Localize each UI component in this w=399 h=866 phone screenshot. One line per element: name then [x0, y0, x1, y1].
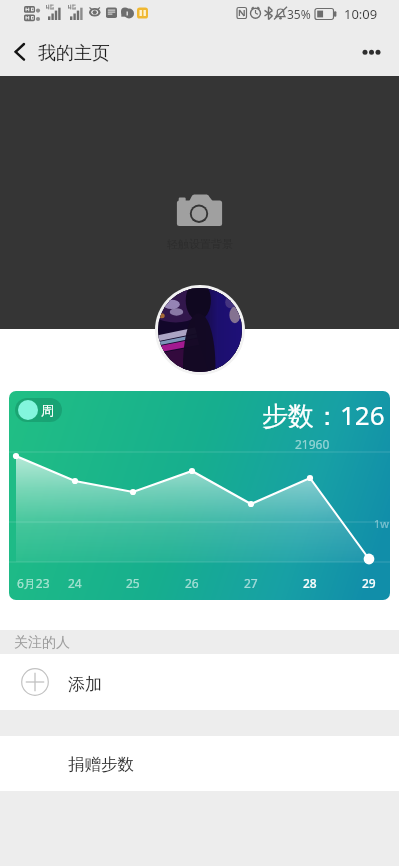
staticText: 26 [185, 575, 199, 591]
staticText: 6月23 [17, 575, 50, 591]
staticText: 10:09 [344, 5, 378, 23]
staticText: 步数：126 [262, 397, 385, 433]
button[interactable]: 周 [15, 398, 62, 422]
button[interactable]: More options [351, 27, 399, 76]
staticText: 28 [303, 575, 317, 591]
staticText: 添加 [68, 674, 102, 695]
staticText: 关注的人 [14, 634, 70, 652]
staticText: 24 [68, 575, 82, 591]
staticText: 捐赠步数 [68, 754, 134, 775]
staticText: 21960 [295, 436, 330, 452]
button[interactable]: Back [0, 27, 44, 76]
staticText: 我的主页 [38, 42, 110, 65]
staticText: 25 [126, 575, 140, 591]
staticText: 1w [374, 516, 389, 531]
button[interactable]: 添加 [0, 654, 399, 710]
staticText: 35% [287, 6, 311, 22]
staticText: 27 [244, 575, 258, 591]
button[interactable]: 21960 [9, 391, 390, 600]
button[interactable]: Profile photo [155, 285, 245, 375]
staticText: 29 [362, 575, 376, 591]
button[interactable]: 捐赠步数 [0, 736, 399, 791]
button[interactable]: Set background image [0, 76, 399, 329]
staticText: 周 [41, 402, 54, 418]
